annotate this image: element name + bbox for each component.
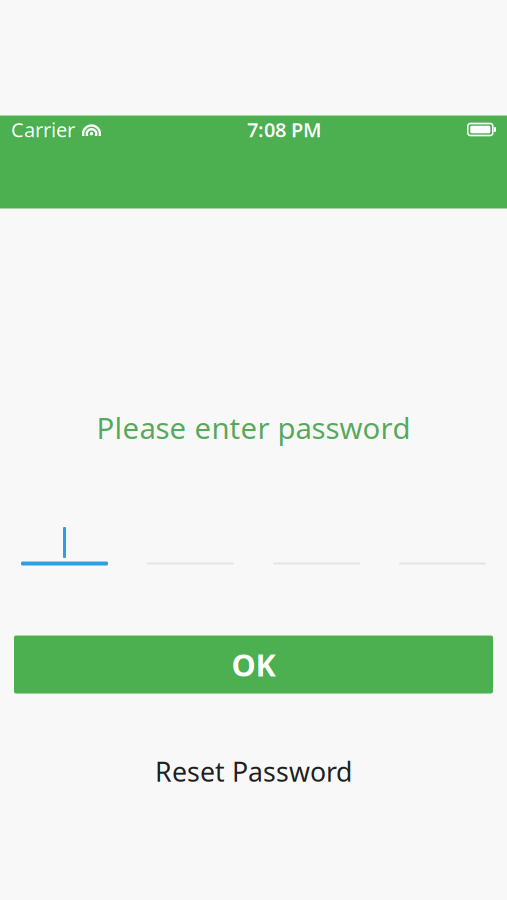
staticText: Carrier — [11, 116, 75, 143]
staticText: Please enter password — [96, 408, 410, 447]
staticText: Reset Password — [155, 754, 352, 789]
staticText: OK — [231, 644, 275, 685]
button[interactable]: OK — [14, 635, 493, 693]
button[interactable]: Reset Password — [139, 758, 368, 784]
staticText: 7:08 PM — [247, 116, 322, 143]
